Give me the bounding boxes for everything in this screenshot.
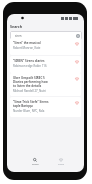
staticText: “Sirae Trick Stefe” Sirens taple Bariqqu — [13, 100, 51, 108]
button[interactable]: Favorite — [74, 41, 79, 46]
button[interactable]: Uber Unspoilt SIREC 5 Diaries performing… — [10, 73, 81, 96]
button[interactable]: Clear search — [76, 34, 80, 38]
staticText: siren — [15, 34, 22, 38]
staticText: Search — [10, 24, 23, 29]
button[interactable]: Favorite — [74, 76, 79, 81]
staticText: Robinson edge Robin 116 — [13, 64, 47, 68]
staticText: Michael Randell 27, Nutri — [13, 89, 46, 93]
staticText: Search — [32, 163, 39, 166]
staticText: Robert Monroe, Kate — [13, 46, 41, 50]
button[interactable]: siren — [10, 31, 82, 40]
button[interactable]: Favorite — [74, 100, 79, 105]
staticText: “Siren” the musical — [13, 41, 41, 45]
staticText: “SIREN” Sirens diaries — [13, 59, 45, 63]
staticText: Saved — [58, 163, 65, 166]
button[interactable]: Search — [30, 158, 40, 166]
button[interactable]: Favorite — [74, 59, 79, 64]
button[interactable]: “SIREN” Sirens diaries — [10, 56, 81, 73]
button[interactable]: Saved — [56, 158, 66, 166]
button[interactable]: “Siren” the musical — [10, 38, 81, 55]
staticText: Uber Unspoilt SIREC 5 Diaries performing… — [13, 76, 51, 88]
button[interactable]: “Sirae Trick Stefe” Sirens taple Bariqqu — [10, 97, 81, 117]
staticText: Nurder Blurn, NYC, Rola — [13, 109, 45, 113]
